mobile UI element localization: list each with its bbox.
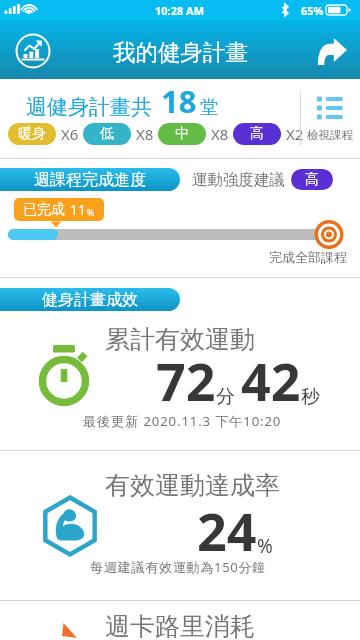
staticText: X2 [286,124,304,144]
button[interactable]: 中 [158,123,206,145]
staticText: X6 [61,124,79,144]
staticText: 65% [301,3,324,18]
staticText: X8 [211,124,229,144]
staticText: 42 [241,345,301,416]
staticText: X8 [136,124,154,144]
staticText: 有效運動達成率 [105,470,280,501]
staticText: 10:28 AM [155,3,205,18]
staticText: 72 [156,345,216,416]
staticText: 我的健身計畫 [113,38,248,66]
staticText: 堂 [200,96,218,119]
staticText: 分 [216,385,235,409]
button[interactable]: Share [317,35,347,65]
button[interactable]: 暖身 [8,123,56,145]
button[interactable]: 高 [291,169,333,190]
staticText: 檢視課程 [307,128,353,142]
staticText: 已完成 [23,201,65,219]
staticText: 週課程完成進度 [34,170,146,190]
staticText: 累計有效運動 [105,324,255,355]
staticText: 最後更新 2020.11.3 下午10:20 [83,412,282,430]
staticText: % [257,533,273,559]
staticText: 完成全部課程 [269,249,347,265]
staticText: 24 [197,495,257,566]
staticText: 健身計畫成效 [42,290,138,310]
staticText: 運動強度建議 [192,170,285,190]
staticText: 11 [70,200,87,219]
staticText: 秒 [301,385,320,409]
button[interactable]: 低 [83,123,131,145]
staticText: % [87,206,95,218]
staticText: 週健身計畫共 [26,94,152,120]
staticText: 高 [305,171,319,189]
staticText: 週卡路里消耗 [105,611,255,640]
staticText: 低 [100,125,114,143]
staticText: 高 [250,125,264,143]
staticText: 暖身 [18,125,46,143]
button[interactable]: 檢視課程 [300,79,360,158]
button[interactable]: 健身計畫成效 [0,288,180,311]
staticText: 中 [175,125,189,143]
button[interactable]: Statistics [14,32,52,70]
staticText: 每週建議有效運動為150分鐘 [90,558,267,576]
button[interactable]: 高 [233,123,281,145]
staticText: 18 [161,80,197,122]
